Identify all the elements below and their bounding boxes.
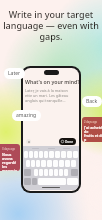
button[interactable] <box>39 151 43 158</box>
button[interactable] <box>41 160 46 167</box>
button[interactable] <box>49 151 54 158</box>
button[interactable] <box>59 160 64 167</box>
button[interactable]: Shift <box>24 169 31 176</box>
button[interactable] <box>29 151 33 158</box>
staticText: J'ai acheté de fruits et du p Le temps é… <box>84 125 102 142</box>
button[interactable] <box>36 160 40 167</box>
button[interactable] <box>59 169 63 176</box>
button[interactable] <box>44 169 48 176</box>
staticText: Nous avons regardé les magasins. <box>2 152 19 171</box>
button[interactable]: Delete <box>71 169 78 176</box>
button[interactable]: 3 days ago <box>0 144 20 171</box>
button[interactable]: Back <box>82 96 102 107</box>
staticText: Back <box>86 98 98 105</box>
staticText: 3 days ago <box>2 147 16 151</box>
button[interactable]: amazing <box>12 110 41 121</box>
button[interactable]: Later <box>4 68 25 79</box>
button[interactable] <box>71 160 76 167</box>
button[interactable] <box>67 151 72 158</box>
button[interactable] <box>55 151 60 158</box>
staticText: Write in your target language — even wit… <box>1 8 101 42</box>
button[interactable] <box>49 169 53 176</box>
button[interactable] <box>61 151 66 158</box>
staticText: Done <box>65 140 74 144</box>
button[interactable] <box>65 160 70 167</box>
button[interactable] <box>64 169 68 176</box>
staticText: 2 days ago <box>84 120 98 124</box>
button[interactable] <box>47 160 52 167</box>
button[interactable]: 2 days ago <box>82 117 102 142</box>
button[interactable]: Done <box>59 138 76 145</box>
button[interactable] <box>39 169 43 176</box>
button[interactable] <box>24 151 28 158</box>
button[interactable]: Numbers <box>24 178 31 185</box>
staticText: amazing <box>16 112 37 119</box>
button[interactable] <box>53 160 58 167</box>
button[interactable] <box>34 169 38 176</box>
button[interactable] <box>31 160 35 167</box>
staticText: Later, je vais à la maison ette un mari.… <box>25 88 69 103</box>
button[interactable] <box>67 178 78 185</box>
staticText: Later <box>8 70 21 77</box>
button[interactable]: Emoji <box>32 178 37 185</box>
button[interactable]: Add <box>26 139 31 144</box>
staticText: What's on your mind? <box>25 78 79 85</box>
button[interactable] <box>73 151 78 158</box>
button[interactable] <box>54 169 58 176</box>
button[interactable] <box>26 160 30 167</box>
button[interactable] <box>34 151 38 158</box>
button[interactable] <box>44 151 48 158</box>
